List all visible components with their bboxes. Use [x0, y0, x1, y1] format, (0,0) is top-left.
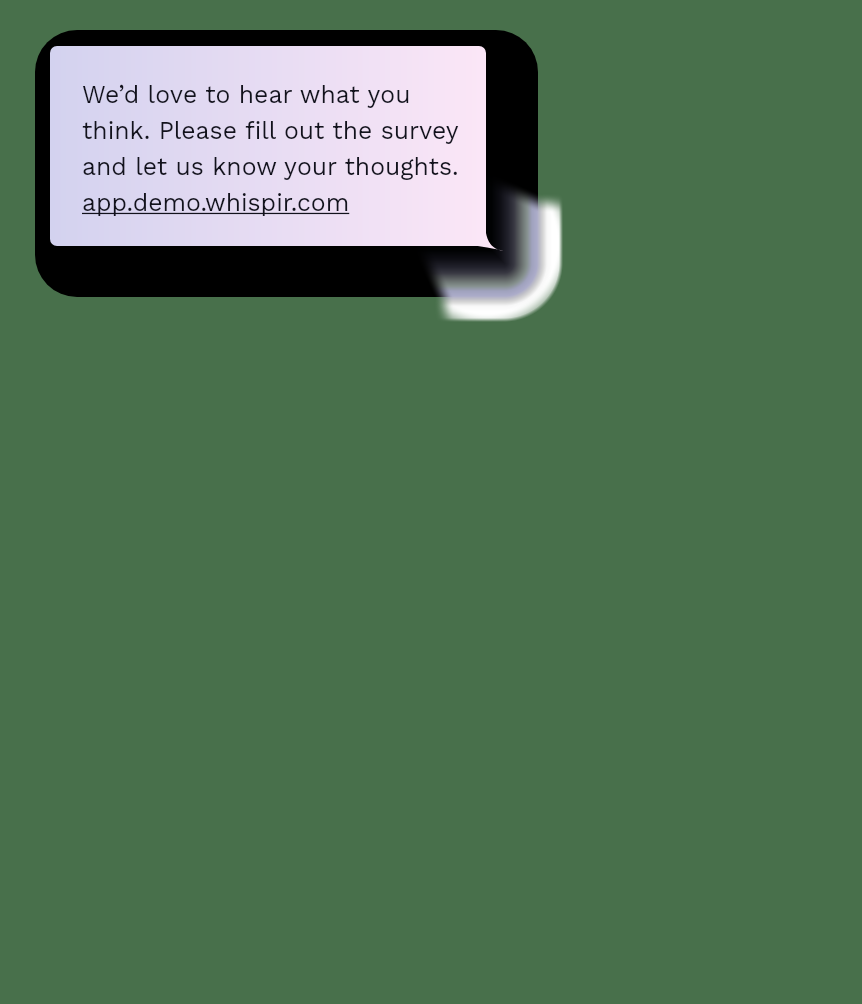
button[interactable]: Chat message from Whispir: [0, 0, 862, 1004]
staticText: We’d love to hear what you think. Please…: [82, 80, 459, 217]
button[interactable]: Open survey link: [82, 80, 459, 217]
